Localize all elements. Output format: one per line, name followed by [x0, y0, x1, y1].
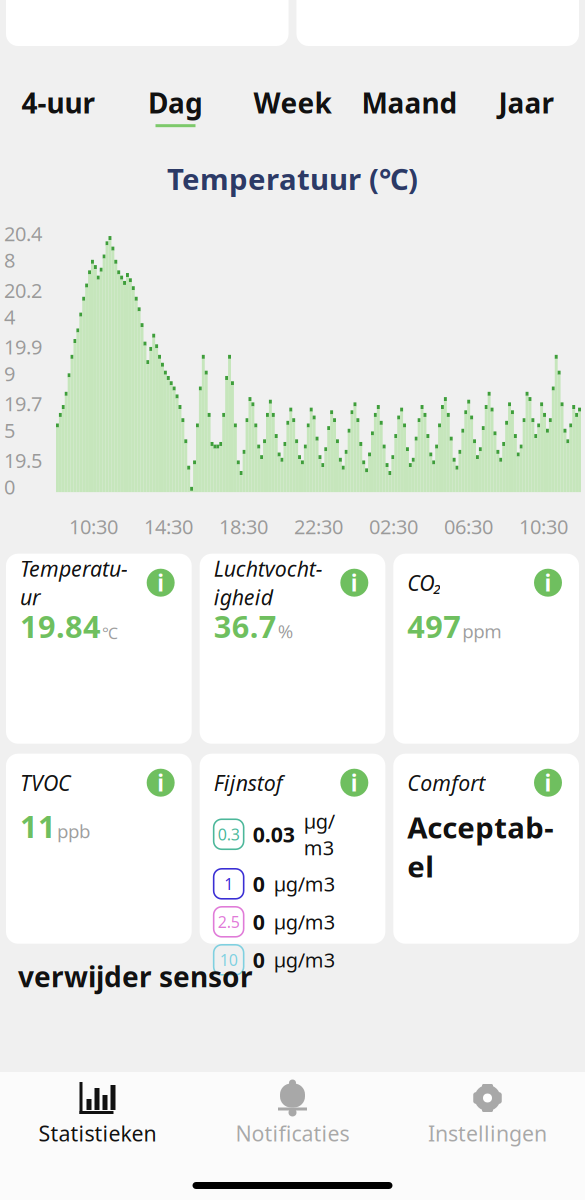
button[interactable]: Info: [144, 566, 178, 600]
staticText: 18:30: [219, 513, 268, 540]
staticText: 497: [407, 606, 461, 646]
staticText: 20.48: [4, 220, 42, 273]
staticText: 11: [20, 806, 56, 846]
staticText: i: [351, 568, 358, 598]
button[interactable]: Temperatuur: [6, 554, 192, 744]
staticText: 02:30: [369, 513, 418, 540]
button[interactable]: Week: [234, 80, 351, 131]
staticText: i: [157, 768, 164, 798]
staticText: 22:30: [294, 513, 343, 540]
staticText: 0: [253, 946, 265, 974]
staticText: ℃: [102, 622, 118, 643]
staticText: 06:30: [444, 513, 493, 540]
staticText: i: [544, 768, 551, 798]
staticText: Temperatuur: [20, 554, 128, 611]
staticText: 2.5: [218, 911, 240, 932]
staticText: Fijnstof: [214, 768, 283, 797]
button[interactable]: Luchtvochtigheid: [200, 554, 385, 744]
button[interactable]: Info: [337, 766, 371, 800]
button[interactable]: Jaar: [468, 80, 585, 131]
button[interactable]: Info: [531, 766, 565, 800]
staticText: i: [351, 768, 358, 798]
button[interactable]: Info: [144, 766, 178, 800]
staticText: 19.99: [4, 334, 42, 387]
staticText: µg/m3: [274, 870, 335, 897]
button[interactable]: TVOC: [6, 754, 192, 944]
staticText: Week: [253, 84, 331, 121]
staticText: Jaar: [498, 84, 554, 121]
staticText: 19.50: [4, 447, 42, 500]
button[interactable]: Comfort: [393, 754, 579, 944]
staticText: Notificaties: [235, 1119, 349, 1147]
staticText: 36.7: [214, 606, 277, 646]
staticText: 20.24: [4, 277, 42, 330]
staticText: i: [544, 568, 551, 598]
staticText: Luchtvochtigheid: [214, 554, 323, 611]
staticText: %: [278, 619, 294, 643]
staticText: 1: [224, 873, 233, 894]
staticText: 0: [253, 908, 265, 936]
staticText: ppb: [57, 819, 90, 843]
staticText: µg/m3: [274, 946, 335, 973]
staticText: Temperatuur (℃): [167, 159, 418, 198]
button[interactable]: CO₂: [393, 554, 579, 744]
staticText: Instellingen: [428, 1119, 547, 1147]
staticText: µg/m3: [304, 808, 335, 861]
staticText: Acceptabel: [407, 808, 553, 886]
staticText: 0.3: [218, 824, 240, 845]
staticText: Maand: [361, 84, 457, 121]
button[interactable]: Notificaties: [195, 1072, 390, 1153]
staticText: 10:30: [69, 513, 118, 540]
button[interactable]: 4-uur: [0, 80, 117, 131]
staticText: Comfort: [407, 768, 485, 797]
staticText: µg/m3: [274, 908, 335, 935]
staticText: ppm: [462, 619, 501, 643]
staticText: 19.84: [20, 606, 101, 646]
button[interactable]: Dag: [117, 80, 234, 131]
staticText: Dag: [148, 84, 203, 121]
staticText: 19.75: [4, 390, 42, 443]
staticText: verwijder sensor: [18, 958, 253, 995]
button[interactable]: Instellingen: [390, 1072, 585, 1153]
staticText: 14:30: [144, 513, 193, 540]
staticText: TVOC: [20, 768, 71, 797]
button[interactable]: Statistieken: [0, 1072, 195, 1153]
staticText: Statistieken: [38, 1119, 156, 1147]
staticText: 0: [253, 870, 265, 898]
staticText: 10: [220, 949, 238, 970]
staticText: i: [157, 568, 164, 598]
button[interactable]: Maand: [351, 80, 468, 131]
staticText: 10:30: [519, 513, 568, 540]
button[interactable]: Fijnstof: [200, 754, 385, 944]
staticText: 0.03: [253, 820, 295, 848]
staticText: 4-uur: [21, 84, 95, 121]
button[interactable]: Info: [531, 566, 565, 600]
button[interactable]: verwijder sensor: [0, 944, 585, 1007]
button[interactable]: Info: [337, 566, 371, 600]
staticText: CO₂: [407, 568, 442, 597]
